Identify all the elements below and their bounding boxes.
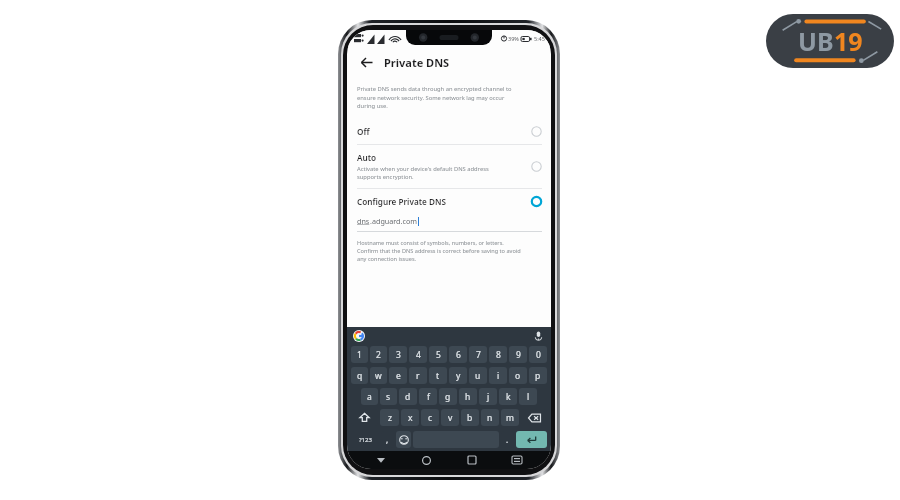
staticText: i: [497, 370, 500, 382]
staticText: Hostname must consist of symbols, number…: [357, 239, 521, 263]
staticText: q: [357, 370, 363, 382]
staticText: p: [535, 370, 541, 382]
button[interactable]: Off: [347, 119, 551, 144]
staticText: .: [506, 434, 509, 445]
staticText: 19: [834, 24, 863, 58]
button[interactable]: ,: [381, 431, 394, 448]
staticText: k: [506, 391, 511, 403]
staticText: Private DNS: [384, 55, 450, 70]
button[interactable]: 7: [469, 346, 487, 363]
button[interactable]: Auto: [347, 145, 551, 188]
button[interactable]: Configure Private DNS: [347, 189, 551, 214]
staticText: Off: [357, 126, 370, 137]
staticText: 8: [496, 349, 501, 361]
button[interactable]: c: [421, 409, 439, 426]
staticText: 3: [396, 349, 401, 361]
button[interactable]: Home: [415, 451, 437, 469]
staticText: 7: [476, 349, 481, 361]
button[interactable]: Back: [356, 52, 376, 72]
staticText: 6: [456, 349, 461, 361]
staticText: Private DNS sends data through an encryp…: [357, 85, 512, 109]
button[interactable]: r: [409, 367, 427, 384]
button[interactable]: 0: [529, 346, 547, 363]
button[interactable]: b: [461, 409, 479, 426]
staticText: m: [506, 412, 514, 424]
staticText: s: [386, 391, 391, 403]
button[interactable]: Shift: [351, 409, 378, 426]
button[interactable]: o: [509, 367, 527, 384]
staticText: ,: [386, 434, 389, 445]
button[interactable]: t: [429, 367, 447, 384]
button[interactable]: Enter: [516, 431, 547, 448]
staticText: u: [475, 370, 481, 382]
button[interactable]: ?123: [351, 431, 379, 448]
button[interactable]: 4: [409, 346, 427, 363]
staticText: c: [428, 412, 433, 424]
button[interactable]: Backspace: [521, 409, 547, 426]
staticText: d: [405, 391, 411, 403]
staticText: e: [396, 370, 401, 382]
staticText: dns: [357, 216, 370, 226]
button[interactable]: 2: [370, 346, 387, 363]
button[interactable]: 6: [449, 346, 467, 363]
staticText: 4: [416, 349, 421, 361]
button[interactable]: Emoji: [396, 431, 411, 448]
button[interactable]: q: [351, 367, 368, 384]
button[interactable]: f: [419, 388, 437, 405]
button[interactable]: Recents: [461, 451, 483, 469]
staticText: b: [467, 412, 473, 424]
staticText: 39%: [508, 35, 519, 42]
button[interactable]: .: [501, 431, 514, 448]
staticText: w: [375, 370, 382, 382]
staticText: Configure Private DNS: [357, 196, 446, 207]
button[interactable]: n: [481, 409, 499, 426]
button[interactable]: h: [459, 388, 477, 405]
button[interactable]: j: [479, 388, 497, 405]
staticText: z: [388, 412, 392, 424]
button[interactable]: 8: [489, 346, 507, 363]
button[interactable]: x: [401, 409, 419, 426]
button[interactable]: Back: [370, 451, 392, 469]
button[interactable]: v: [441, 409, 459, 426]
staticText: 5:45: [534, 35, 545, 42]
staticText: v: [448, 412, 453, 424]
staticText: f: [427, 391, 430, 403]
staticText: 0: [536, 349, 541, 361]
button[interactable]: w: [370, 367, 387, 384]
button[interactable]: 1: [351, 346, 368, 363]
staticText: o: [515, 370, 521, 382]
staticText: j: [487, 391, 490, 403]
staticText: ?123: [359, 436, 372, 444]
button[interactable]: s: [380, 388, 397, 405]
button[interactable]: g: [439, 388, 457, 405]
staticText: l: [527, 391, 530, 403]
button[interactable]: m: [501, 409, 519, 426]
staticText: Auto: [357, 152, 377, 163]
button[interactable]: y: [449, 367, 467, 384]
button[interactable]: Google: [353, 330, 365, 342]
button[interactable]: Hide keyboard: [506, 451, 528, 469]
staticText: x: [408, 412, 413, 424]
button[interactable]: l: [519, 388, 537, 405]
staticText: 1: [357, 349, 362, 361]
staticText: n: [487, 412, 493, 424]
staticText: h: [465, 391, 471, 403]
staticText: r: [416, 370, 420, 382]
staticText: UB: [798, 24, 834, 58]
button[interactable]: 9: [509, 346, 527, 363]
staticText: 9: [516, 349, 521, 361]
button[interactable]: 3: [389, 346, 407, 363]
button[interactable]: Voice input: [532, 329, 545, 342]
button[interactable]: e: [389, 367, 407, 384]
button[interactable]: z: [380, 409, 399, 426]
button[interactable]: k: [499, 388, 517, 405]
button[interactable]: u: [469, 367, 487, 384]
button[interactable]: 5: [429, 346, 447, 363]
button[interactable]: p: [529, 367, 547, 384]
button[interactable]: a: [361, 388, 378, 405]
button[interactable]: d: [399, 388, 417, 405]
staticText: a: [367, 391, 372, 403]
staticText: y: [456, 370, 461, 382]
button[interactable]: i: [489, 367, 507, 384]
